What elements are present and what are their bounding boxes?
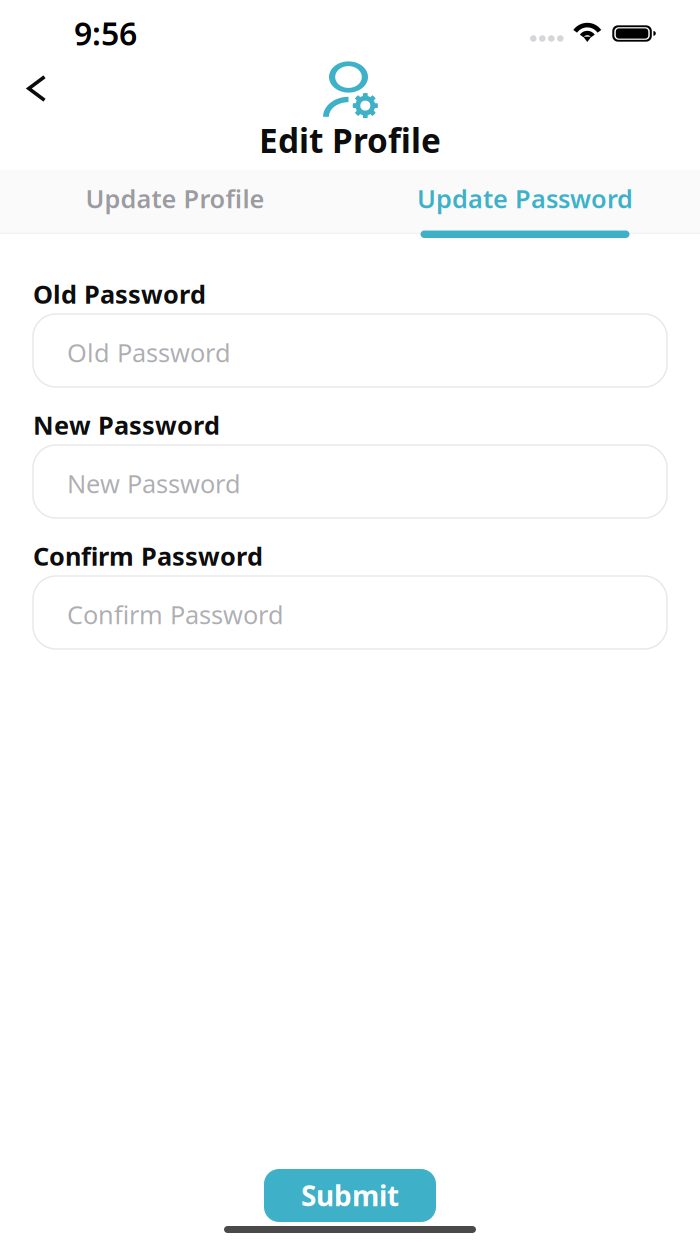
button[interactable]: Update Profile [0, 170, 350, 234]
button[interactable]: Old Password [33, 314, 667, 387]
button[interactable]: Update Password [350, 170, 700, 234]
button[interactable]: Back [14, 65, 59, 112]
staticText: Confirm Password [33, 539, 263, 573]
staticText: New Password [33, 408, 220, 442]
staticText: Update Password [417, 182, 633, 215]
staticText: Confirm Password [67, 598, 284, 631]
button[interactable]: Confirm Password [33, 576, 667, 649]
staticText: Submit [301, 1177, 399, 1214]
staticText: Old Password [33, 277, 206, 311]
staticText: Update Profile [85, 182, 264, 215]
button[interactable]: Submit [264, 1169, 436, 1222]
staticText: Old Password [67, 336, 231, 369]
staticText: Edit Profile [259, 118, 441, 162]
button[interactable]: New Password [33, 445, 667, 518]
staticText: 9:56 [74, 12, 137, 54]
staticText: New Password [67, 467, 241, 500]
